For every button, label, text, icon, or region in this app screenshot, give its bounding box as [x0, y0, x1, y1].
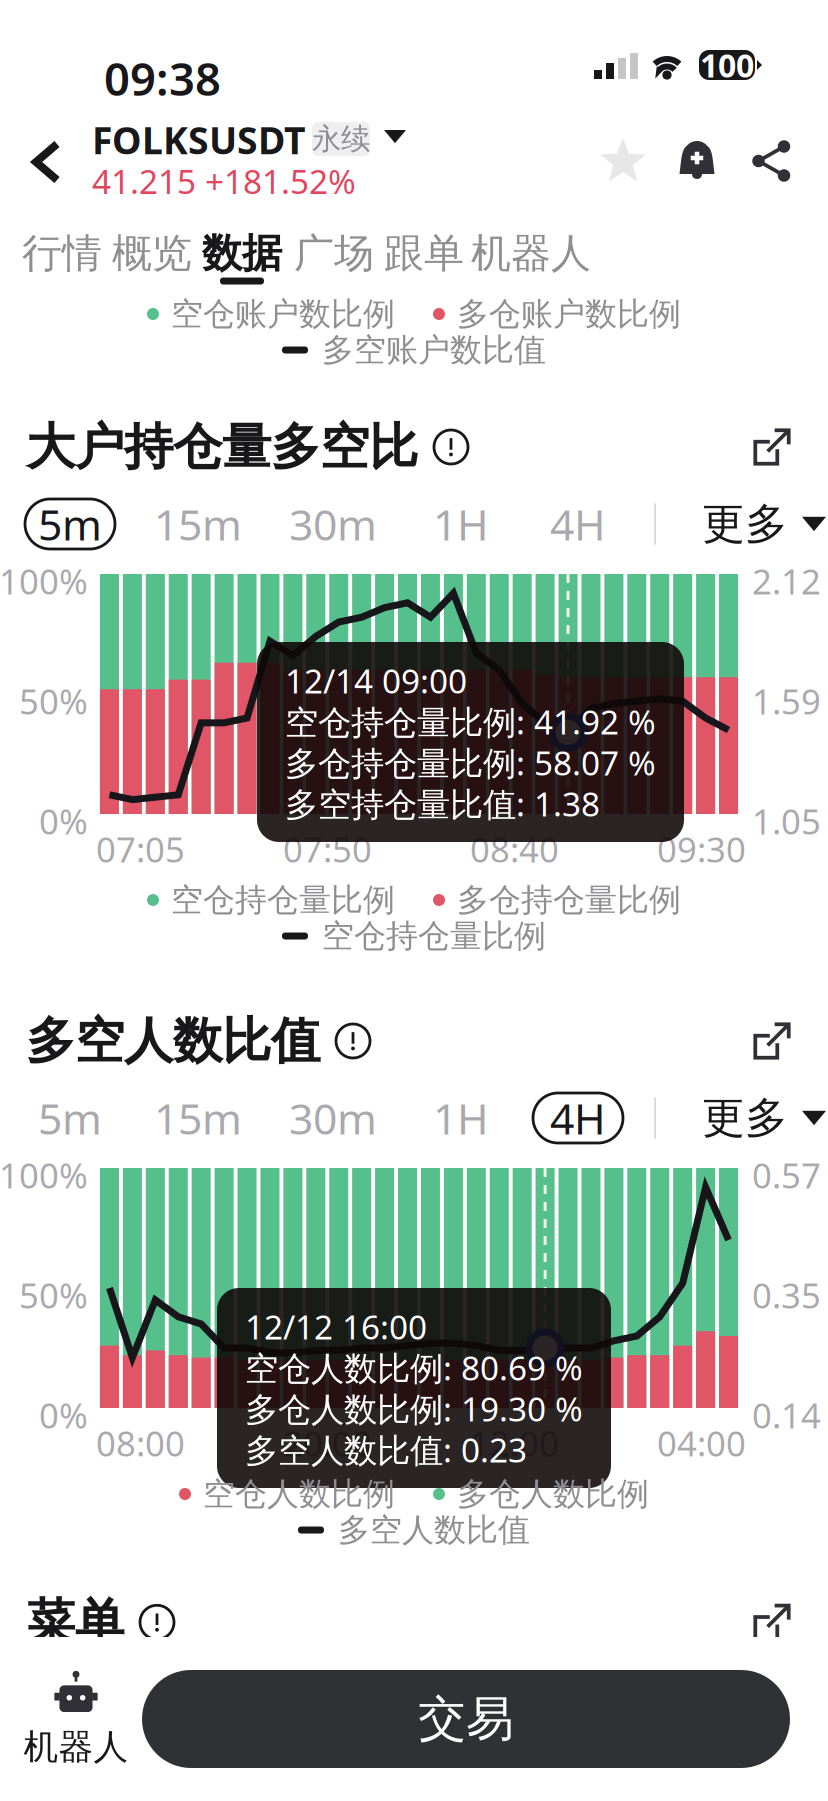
button[interactable]: 数据: [203, 222, 281, 292]
button[interactable]: 30m: [288, 499, 378, 549]
staticText: 12:00: [470, 1420, 559, 1466]
staticText: 0.35: [752, 1272, 821, 1318]
button[interactable]: 4H: [533, 499, 623, 549]
button[interactable]: 跟单: [385, 222, 463, 292]
button[interactable]: Favorite: [590, 128, 656, 194]
staticText: 0.57: [752, 1152, 821, 1198]
button[interactable]: 15m: [153, 499, 243, 549]
staticText: 空仓持仓量比例: 41.92 %: [285, 699, 656, 744]
button[interactable]: 机器人: [479, 222, 583, 292]
staticText: 2.12: [752, 558, 821, 604]
button[interactable]: 1H: [416, 1093, 506, 1143]
staticText: 15m: [154, 496, 242, 552]
staticText: 04:00: [657, 1420, 746, 1466]
staticText: 空仓持仓量比例: [171, 880, 395, 920]
button[interactable]: Price alert: [666, 130, 728, 192]
staticText: 1H: [433, 496, 489, 552]
staticText: 多仓人数比例: [457, 1474, 649, 1514]
staticText: 多空人数比值: [338, 1510, 530, 1550]
staticText: 广场: [294, 229, 374, 278]
staticText: 4H: [550, 1090, 606, 1146]
staticText: 数据: [202, 229, 282, 278]
button[interactable]: 行情: [23, 222, 101, 292]
staticText: 0%: [39, 1392, 88, 1438]
staticText: 41.215 +181.52%: [92, 159, 356, 203]
button[interactable]: 概览: [113, 222, 191, 292]
staticText: 20:00: [283, 1420, 372, 1466]
staticText: 空仓持仓量比例: [322, 916, 546, 956]
staticText: 多空人数比值: 0.23: [245, 1427, 527, 1472]
button[interactable]: 5m: [25, 499, 115, 549]
staticText: 多空持仓量比值: 1.38: [285, 781, 600, 826]
staticText: 1H: [433, 1090, 489, 1146]
staticText: 12/14 09:00: [285, 658, 467, 703]
staticText: 永续: [312, 121, 370, 157]
staticText: 机器人: [23, 1726, 128, 1768]
button[interactable]: Share: [740, 130, 802, 192]
button[interactable]: 更多: [702, 499, 826, 549]
staticText: 30m: [289, 496, 377, 552]
staticText: 多空账户数比值: [322, 330, 546, 370]
button[interactable]: 4H: [533, 1093, 623, 1143]
staticText: 08:40: [470, 826, 559, 872]
staticText: 跟单: [384, 229, 464, 278]
staticText: 5m: [38, 1090, 102, 1146]
staticText: 菜单: [26, 1592, 124, 1653]
staticText: 大户持仓量多空比: [26, 417, 418, 477]
staticText: 08:00: [96, 1420, 185, 1466]
staticText: 多仓人数比例: 19.30 %: [245, 1386, 583, 1431]
staticText: 50%: [19, 1272, 88, 1318]
staticText: 07:05: [96, 826, 185, 872]
staticText: 100%: [0, 558, 88, 604]
staticText: 09:38: [104, 48, 221, 108]
staticText: 多空人数比值: [26, 1011, 320, 1071]
button[interactable]: 交易: [142, 1670, 790, 1768]
button[interactable]: 1H: [416, 499, 506, 549]
button[interactable]: 30m: [288, 1093, 378, 1143]
staticText: 12/12 16:00: [245, 1304, 427, 1349]
button[interactable]: 15m: [153, 1093, 243, 1143]
staticText: 1.59: [752, 678, 821, 724]
staticText: 行情: [22, 229, 102, 278]
button[interactable]: Back: [10, 122, 82, 202]
button[interactable]: 5m: [25, 1093, 115, 1143]
staticText: 机器人: [471, 229, 591, 278]
staticText: 0%: [39, 798, 88, 844]
staticText: 多仓持仓量比例: 58.07 %: [285, 740, 656, 785]
staticText: 07:50: [283, 826, 372, 872]
staticText: 更多: [702, 498, 788, 550]
staticText: 概览: [112, 229, 192, 278]
staticText: 更多: [702, 1092, 788, 1144]
staticText: 09:30: [657, 826, 746, 872]
button[interactable]: 更多: [702, 1093, 826, 1143]
button[interactable]: Expand chart: [744, 1013, 800, 1069]
staticText: 空仓账户数比例: [171, 294, 395, 334]
staticText: 100: [700, 44, 754, 86]
staticText: 5m: [38, 496, 102, 552]
staticText: 100%: [0, 1152, 88, 1198]
button[interactable]: Expand chart: [744, 419, 800, 475]
staticText: 50%: [19, 678, 88, 724]
button[interactable]: 机器人: [10, 1654, 142, 1784]
staticText: 交易: [418, 1689, 514, 1748]
staticText: 空仓人数比例: [203, 1474, 395, 1514]
staticText: 空仓人数比例: 80.69 %: [245, 1345, 583, 1390]
staticText: 1.05: [752, 798, 821, 844]
staticText: 4H: [550, 496, 606, 552]
staticText: 多仓账户数比例: [457, 294, 681, 334]
staticText: 15m: [154, 1090, 242, 1146]
staticText: 多仓持仓量比例: [457, 880, 681, 920]
staticText: FOLKSUSDT: [92, 115, 306, 165]
staticText: 0.14: [752, 1392, 821, 1438]
button[interactable]: 广场: [295, 222, 373, 292]
staticText: 30m: [289, 1090, 377, 1146]
